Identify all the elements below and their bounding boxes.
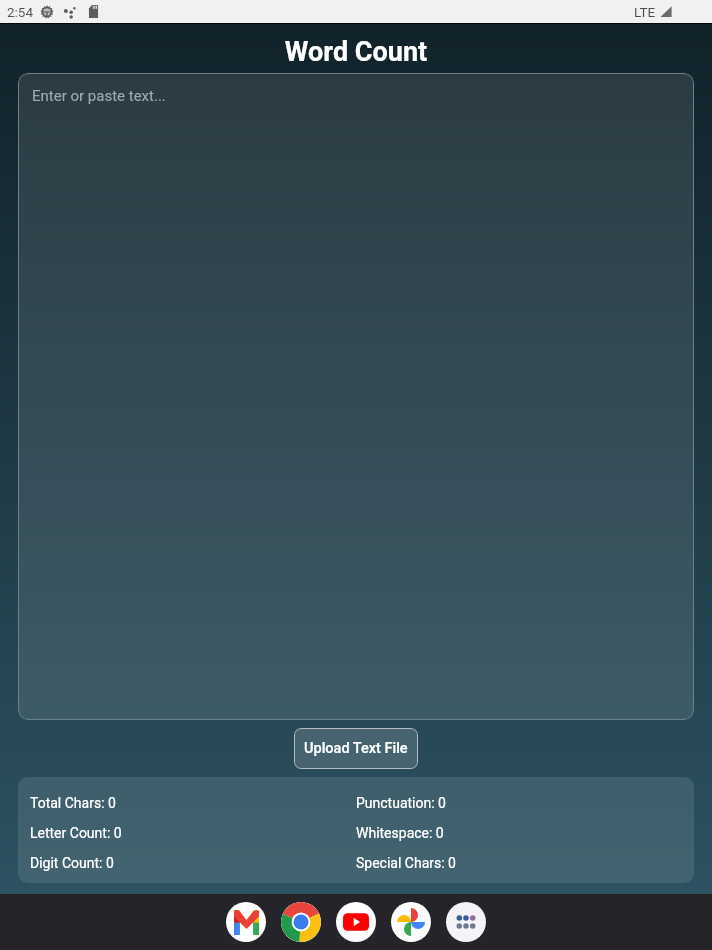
staticText: LTE	[634, 4, 656, 20]
button[interactable]: Gmail	[226, 902, 266, 942]
staticText: Digit Count: 0	[30, 855, 114, 871]
staticText: Whitespace: 0	[356, 825, 444, 841]
button[interactable]: Enter or paste text...	[18, 73, 694, 720]
staticText: Special Chars: 0	[356, 855, 456, 871]
staticText: Upload Text File	[304, 740, 408, 757]
staticText: Enter or paste text...	[32, 87, 166, 105]
staticText: Word Count	[0, 36, 712, 68]
staticText: 2:54	[7, 4, 34, 20]
button[interactable]: Chrome	[281, 902, 321, 942]
staticText: Punctuation: 0	[356, 795, 446, 811]
staticText: Letter Count: 0	[30, 825, 122, 841]
button[interactable]: Photos	[391, 902, 431, 942]
button[interactable]: All apps	[446, 902, 486, 942]
button[interactable]: Upload Text File	[294, 728, 418, 769]
staticText: Total Chars: 0	[30, 795, 116, 811]
button[interactable]: YouTube	[336, 902, 376, 942]
